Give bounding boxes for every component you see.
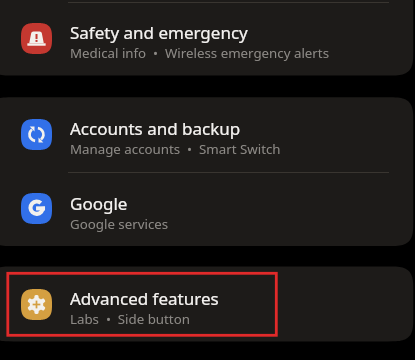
staticText: Safety and emergency xyxy=(70,21,248,44)
staticText: Manage accounts • Smart Switch xyxy=(70,140,281,158)
button[interactable]: Google xyxy=(0,172,415,246)
staticText: Medical info • Wireless emergency alerts xyxy=(70,44,329,62)
staticText: Advanced features xyxy=(70,287,219,310)
button[interactable]: Accounts and backup xyxy=(0,97,415,171)
button[interactable]: Safety and emergency xyxy=(0,2,415,75)
staticText: Accounts and backup xyxy=(70,117,241,140)
button[interactable]: Advanced features xyxy=(0,267,415,342)
staticText: Labs • Side button xyxy=(70,310,190,328)
staticText: Google xyxy=(70,192,128,215)
staticText: Google services xyxy=(70,215,169,233)
